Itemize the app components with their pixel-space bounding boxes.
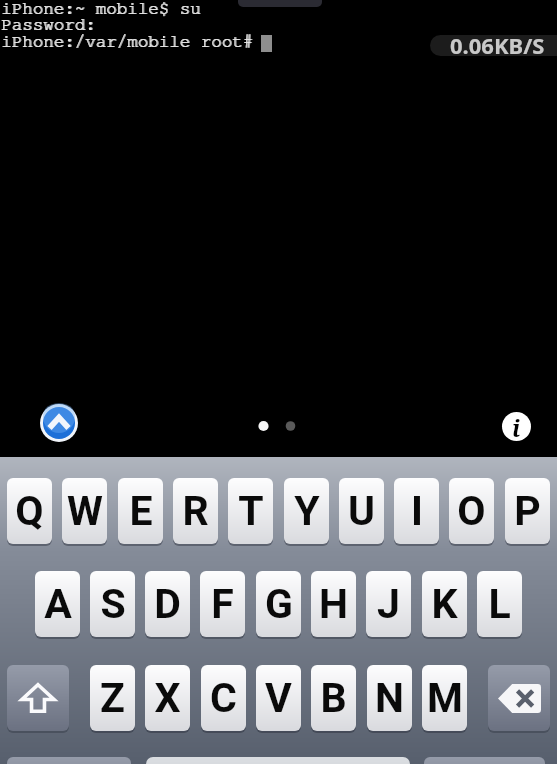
staticText: A xyxy=(44,580,72,628)
button[interactable]: U xyxy=(339,478,384,544)
button[interactable]: R xyxy=(173,478,218,544)
button[interactable]: E xyxy=(118,478,163,544)
staticText: D xyxy=(154,580,181,628)
button[interactable]: Return xyxy=(424,757,545,764)
button[interactable]: P xyxy=(505,478,550,544)
staticText: S xyxy=(100,580,126,628)
staticText: Z xyxy=(100,674,125,722)
staticText: W xyxy=(67,487,103,535)
button[interactable]: D xyxy=(145,571,190,637)
button[interactable]: K xyxy=(422,571,467,637)
button[interactable]: S xyxy=(90,571,135,637)
button[interactable]: B xyxy=(311,665,356,731)
staticText: F xyxy=(211,580,234,628)
button[interactable]: Delete xyxy=(488,665,550,731)
button[interactable]: L xyxy=(477,571,522,637)
staticText: Q xyxy=(15,487,44,535)
button[interactable]: Space xyxy=(146,757,410,764)
button[interactable]: M xyxy=(422,665,467,731)
button[interactable]: Scroll up xyxy=(39,403,79,443)
staticText: L xyxy=(488,580,511,628)
button[interactable]: N xyxy=(367,665,412,731)
staticText: G xyxy=(265,580,293,628)
staticText: 0.06KB/S xyxy=(450,30,545,60)
staticText: U xyxy=(348,487,375,535)
staticText: B xyxy=(320,674,347,722)
staticText: C xyxy=(210,674,237,722)
staticText: O xyxy=(457,487,486,535)
staticText: Password: xyxy=(2,16,97,34)
button[interactable]: C xyxy=(201,665,246,731)
staticText: i xyxy=(512,412,521,443)
staticText: J xyxy=(377,580,400,628)
staticText: X xyxy=(154,674,181,722)
button[interactable]: Z xyxy=(90,665,135,731)
staticText: Password: xyxy=(1,16,96,34)
button[interactable]: W xyxy=(62,478,107,544)
button[interactable]: Shift xyxy=(7,665,69,731)
button[interactable]: F xyxy=(200,571,245,637)
button[interactable]: J xyxy=(366,571,411,637)
staticText: M xyxy=(427,674,463,722)
button[interactable]: O xyxy=(449,478,494,544)
button[interactable]: Numbers xyxy=(7,757,131,764)
button[interactable]: V xyxy=(256,665,301,731)
button[interactable]: Info xyxy=(500,410,533,443)
staticText: R xyxy=(182,487,209,535)
button[interactable]: T xyxy=(228,478,273,544)
button[interactable]: I xyxy=(394,478,439,544)
staticText: N xyxy=(375,674,404,722)
button[interactable]: A xyxy=(35,571,80,637)
staticText: V xyxy=(265,674,292,722)
staticText: iPhone:~ mobile$ su xyxy=(1,0,201,18)
staticText: iPhone:/var/mobile root# xyxy=(2,33,254,51)
staticText: P xyxy=(514,487,541,535)
staticText: iPhone:~ mobile$ su xyxy=(2,0,202,18)
button[interactable]: Y xyxy=(284,478,329,544)
button[interactable]: H xyxy=(311,571,356,637)
button[interactable]: G xyxy=(256,571,301,637)
staticText: K xyxy=(431,580,458,628)
staticText: T xyxy=(238,487,264,535)
staticText: I xyxy=(411,487,423,535)
button[interactable]: X xyxy=(145,665,190,731)
button[interactable]: Q xyxy=(7,478,52,544)
staticText: Y xyxy=(294,487,320,535)
staticText: E xyxy=(129,487,153,535)
staticText: H xyxy=(319,580,348,628)
staticText: iPhone:/var/mobile root# xyxy=(1,33,253,51)
